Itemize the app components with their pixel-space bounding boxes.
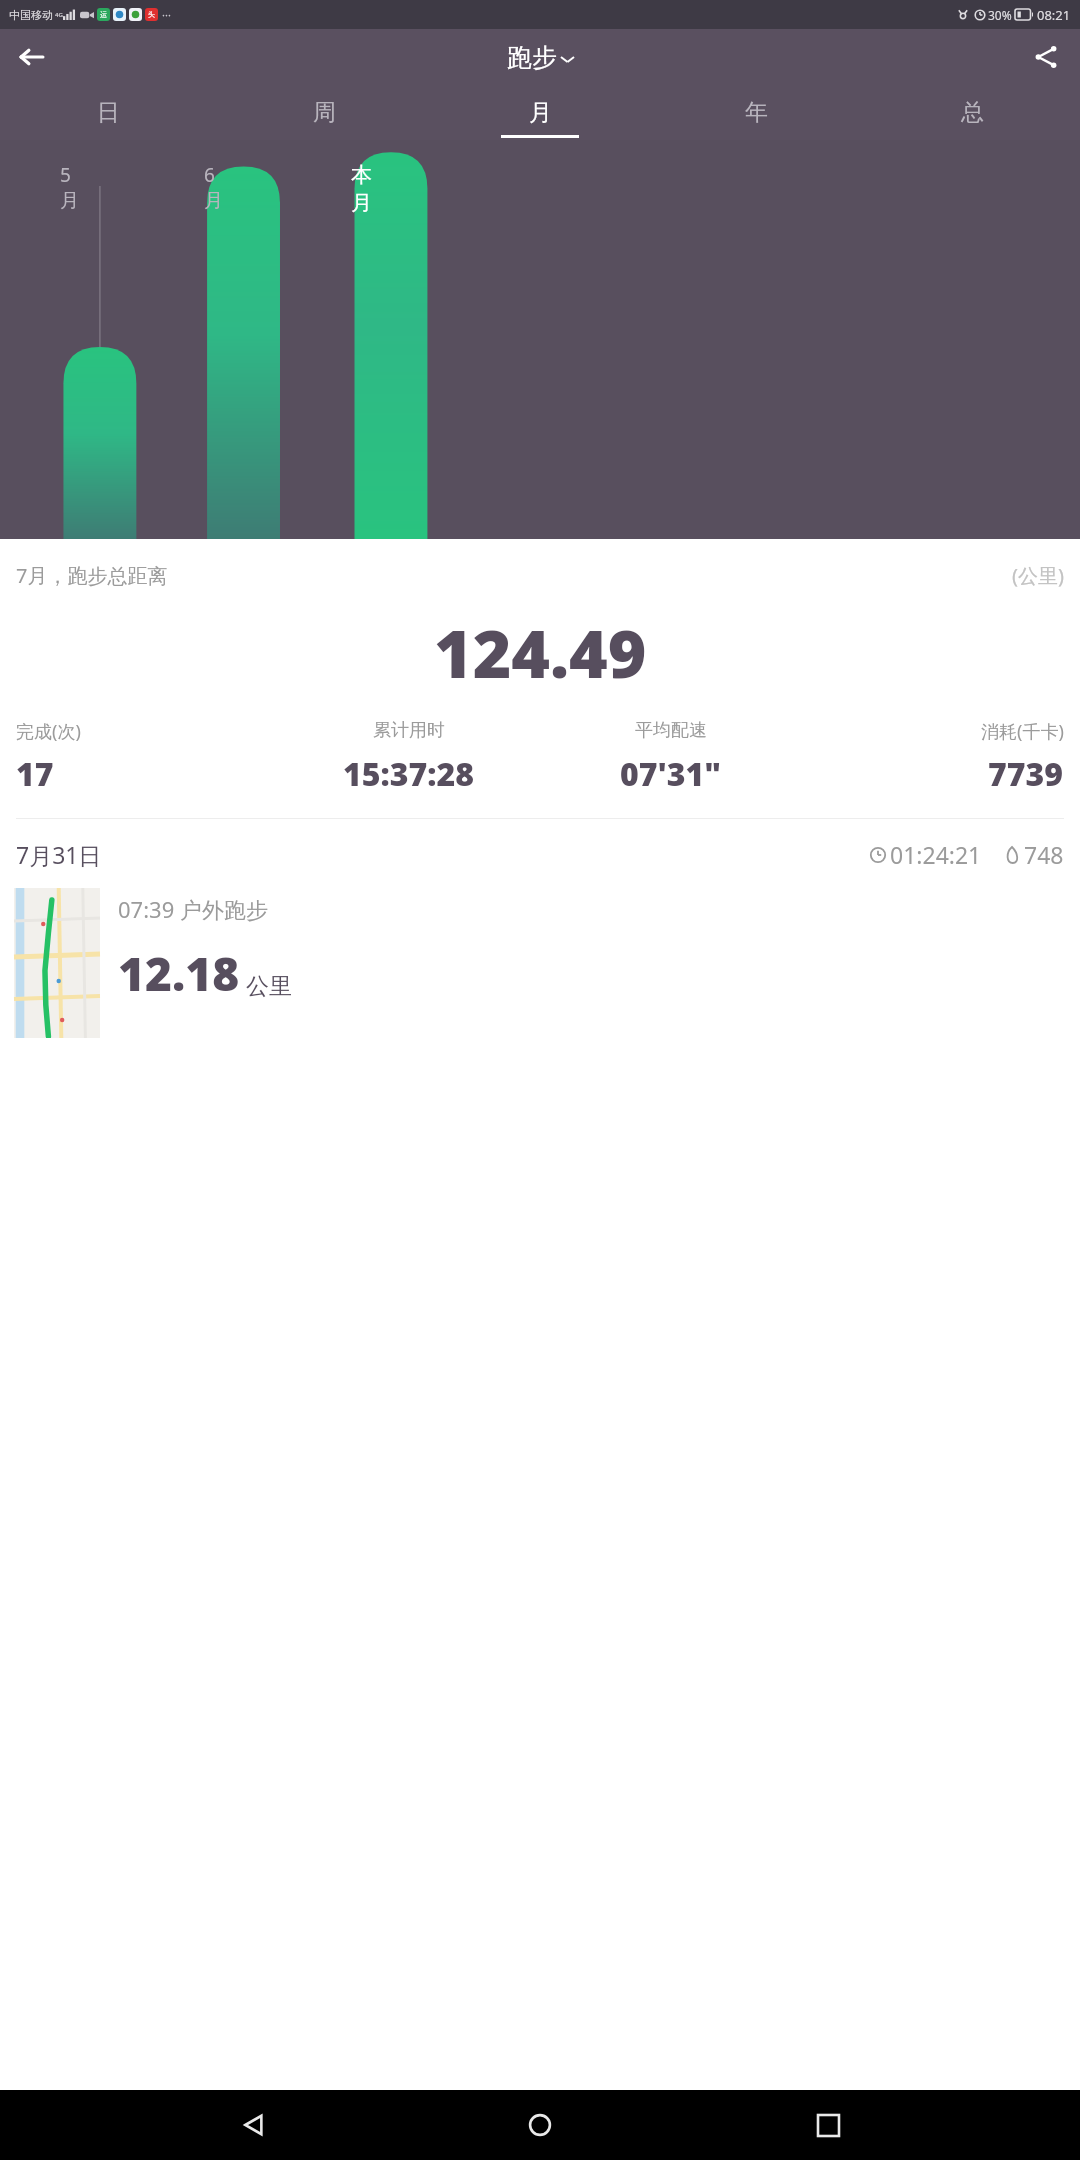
staticText: 消耗(千卡) (981, 719, 1064, 744)
button[interactable]: 周 (216, 85, 432, 140)
staticText: 运 (100, 10, 107, 19)
button[interactable]: 年 (648, 85, 864, 140)
staticText: 中国移动 (9, 8, 53, 22)
staticText: 头 (148, 10, 155, 19)
staticText: 07:39 户外跑步 (118, 894, 268, 924)
staticText: 15:37:28 (343, 752, 475, 796)
staticText: (公里) (1012, 562, 1064, 589)
button[interactable]: 月 (432, 85, 648, 140)
staticText: 7月，跑步总距离 (16, 562, 168, 589)
staticText: 124.49 (434, 607, 647, 697)
button[interactable]: Back (8, 33, 56, 81)
staticText: 08:21 (1037, 6, 1071, 24)
button[interactable]: Share (1022, 33, 1070, 81)
staticText: 4G (55, 11, 63, 19)
staticText: 完成(次) (16, 719, 81, 744)
staticText: 累计用时 (373, 719, 445, 742)
staticText: 07'31" (620, 752, 722, 796)
staticText: 7月31日 (16, 839, 102, 870)
staticText: 月 (529, 98, 552, 127)
button[interactable]: Home (505, 2090, 575, 2160)
staticText: 平均配速 (635, 719, 707, 742)
button[interactable]: Recents (793, 2090, 863, 2160)
button[interactable]: 日 (0, 85, 216, 140)
button[interactable]: 7月31日 (0, 839, 1080, 1038)
staticText: 跑步 (507, 42, 557, 73)
staticText: 12.18 (118, 942, 240, 1005)
staticText: 周 (313, 98, 336, 127)
staticText: ··· (162, 7, 171, 22)
button[interactable]: 总 (864, 85, 1080, 140)
staticText: 公里 (246, 972, 292, 1001)
button[interactable]: 跑步 (507, 42, 574, 73)
staticText: 日 (97, 98, 120, 127)
staticText: 年 (745, 98, 768, 127)
staticText: 17 (16, 752, 54, 796)
staticText: 7739 (988, 752, 1064, 796)
button[interactable]: Back (218, 2090, 288, 2160)
staticText: 总 (961, 98, 984, 127)
staticText: 748 (1024, 839, 1064, 870)
staticText: 01:24:21 (890, 839, 982, 870)
staticText: 30% (988, 7, 1012, 23)
